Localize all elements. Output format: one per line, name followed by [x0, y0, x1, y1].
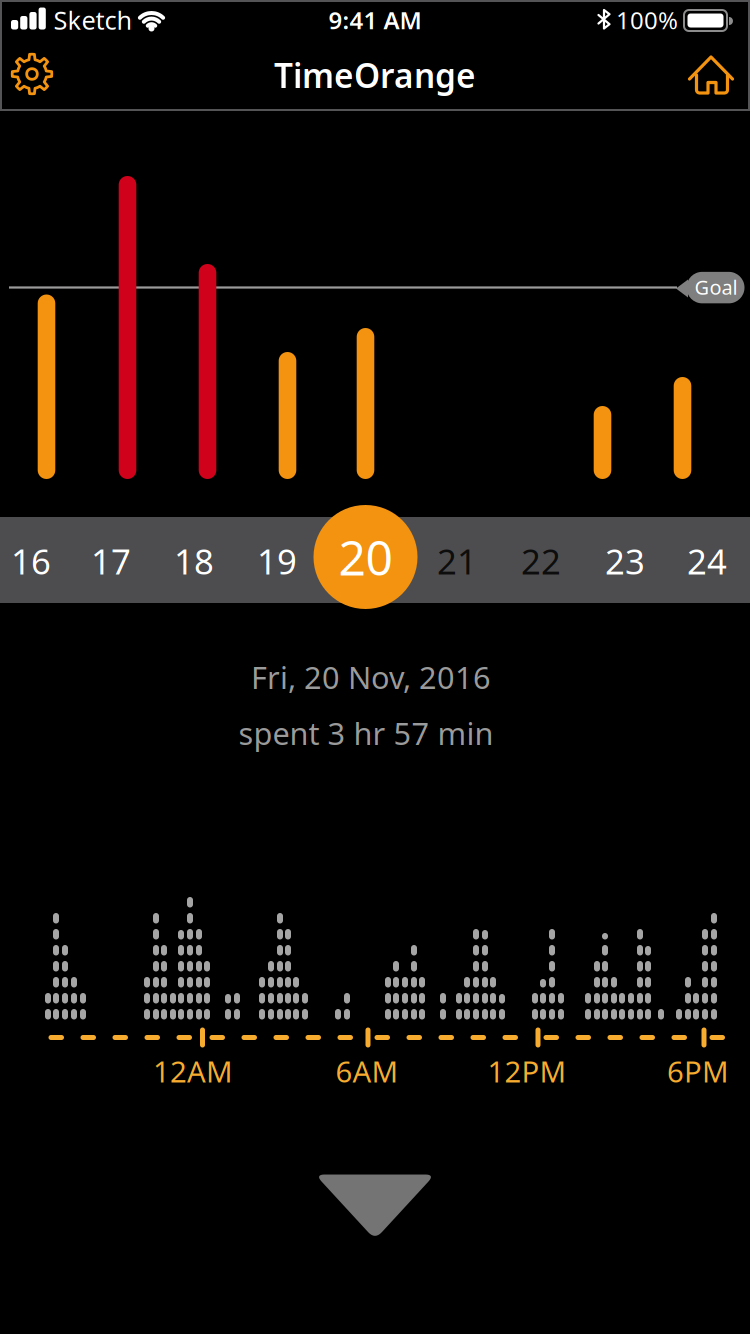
button[interactable]: 17	[72, 518, 150, 604]
staticText: 16	[11, 538, 51, 584]
button[interactable]	[10, 52, 54, 96]
staticText: 24	[687, 538, 727, 584]
button[interactable]: 23	[586, 518, 664, 604]
staticText: 19	[257, 538, 297, 584]
staticText: spent 3 hr 57 min	[238, 713, 493, 753]
button[interactable]: 22	[502, 518, 580, 604]
staticText: 23	[605, 538, 645, 584]
staticText: 21	[437, 538, 477, 584]
button[interactable]	[687, 51, 735, 97]
staticText: 6AM	[335, 1051, 398, 1090]
staticText: TimeOrange	[274, 53, 476, 97]
staticText: 22	[521, 538, 561, 584]
button[interactable]: 18	[155, 518, 233, 604]
staticText: 9:41 AM	[328, 4, 421, 36]
staticText: 12PM	[487, 1051, 566, 1090]
staticText: 12AM	[153, 1051, 233, 1090]
button[interactable]: 21	[418, 518, 496, 604]
button[interactable]	[310, 1167, 440, 1247]
button[interactable]: 24	[668, 518, 746, 604]
button[interactable]: 19	[238, 518, 316, 604]
staticText: Goal	[694, 274, 737, 300]
staticText: 18	[174, 538, 214, 584]
staticText: 20	[338, 525, 392, 589]
button[interactable]: 20	[313, 505, 417, 609]
staticText: Fri, 20 Nov, 2016	[251, 657, 491, 697]
staticText: Sketch	[53, 3, 132, 37]
staticText: 6PM	[667, 1051, 729, 1090]
staticText: 17	[91, 538, 131, 584]
staticText: 100%	[616, 4, 678, 36]
button[interactable]: 16	[0, 518, 70, 604]
